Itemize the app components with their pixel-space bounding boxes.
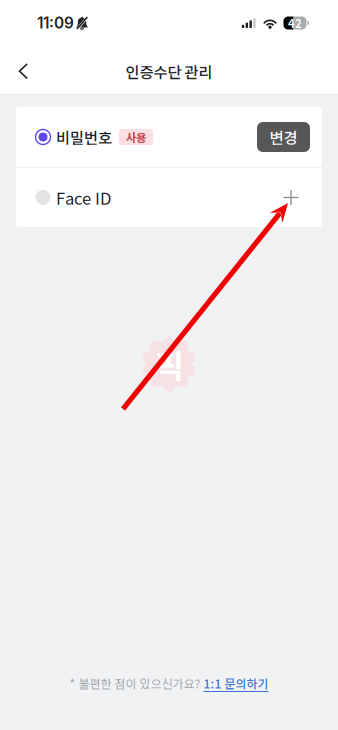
staticText: 사용 (126, 129, 146, 145)
staticText: 인증수단 관리 (125, 60, 212, 83)
staticText: 42 (288, 15, 302, 31)
button[interactable]: Face ID (16, 168, 322, 227)
staticText: 변경 (269, 126, 297, 148)
button[interactable]: 비밀번호 (16, 107, 322, 167)
button[interactable]: 1:1 문의하기 (203, 675, 268, 692)
staticText: 1:1 문의하기 (203, 675, 268, 692)
staticText: 비밀번호 (56, 126, 112, 148)
staticText: 11:09 (37, 14, 74, 32)
button[interactable]: Back (0, 46, 47, 94)
staticText: * 불편한 점이 있으신가요? (69, 675, 203, 692)
staticText: 픽 (154, 341, 183, 387)
staticText: Face ID (56, 185, 111, 209)
